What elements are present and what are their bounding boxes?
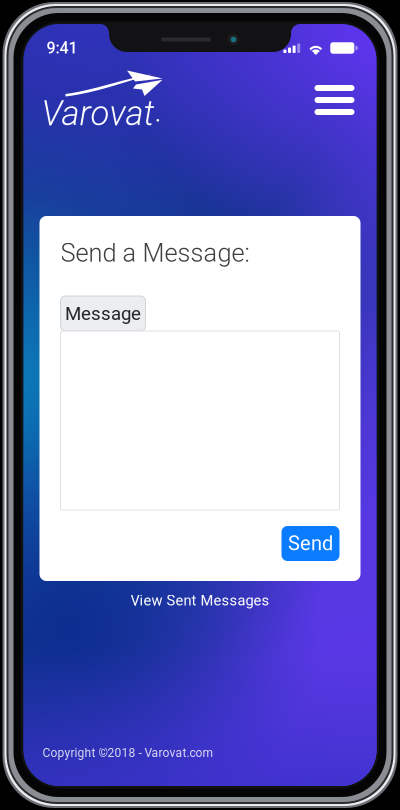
- staticText: Varovat: [41, 93, 154, 134]
- staticText: Send a Message:: [60, 238, 249, 268]
- staticText: Message: [65, 303, 141, 324]
- button[interactable]: Send: [281, 526, 339, 561]
- staticText: Send: [288, 532, 333, 555]
- button[interactable]: View Sent Messages: [23, 581, 376, 617]
- staticText: Copyright ©2018 - Varovat.com: [42, 746, 213, 760]
- staticText: View Sent Messages: [130, 592, 269, 609]
- button[interactable]: Menu: [314, 85, 354, 115]
- staticText: 9:41: [46, 39, 77, 57]
